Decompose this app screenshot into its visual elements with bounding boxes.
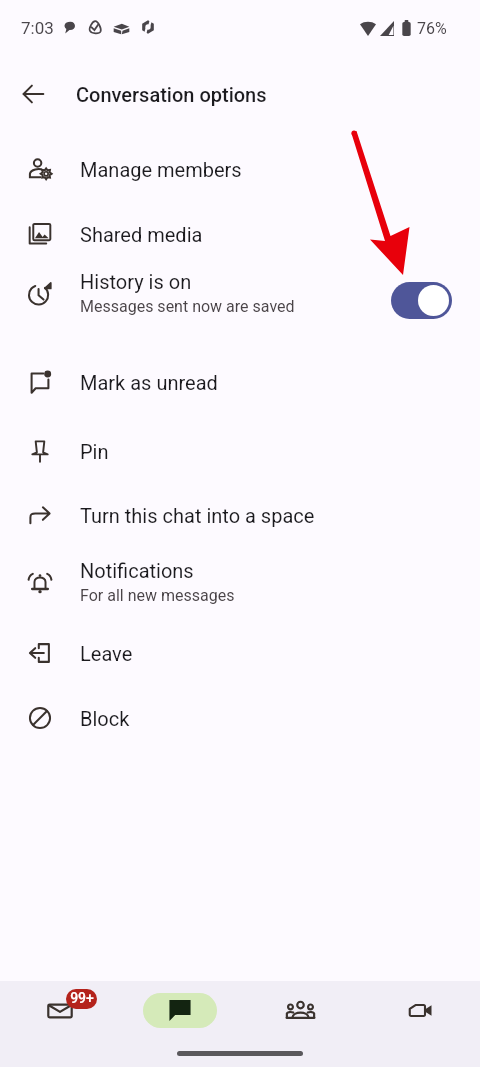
staticText: Mark as unread: [80, 371, 218, 394]
staticText: 76%: [417, 19, 447, 38]
staticText: Shared media: [80, 223, 203, 246]
button[interactable]: History is on: [0, 261, 480, 327]
staticText: Messages sent now are saved: [80, 297, 295, 316]
button[interactable]: Mark as unread: [0, 353, 480, 411]
staticText: Notifications: [80, 559, 194, 582]
button[interactable]: Block: [0, 689, 480, 747]
staticText: 99+: [70, 990, 94, 1006]
staticText: 7:03: [21, 18, 54, 38]
button[interactable]: Chat: [120, 981, 240, 1039]
staticText: Conversation options: [76, 83, 267, 106]
button[interactable]: Mail: [0, 981, 120, 1039]
button[interactable]: Manage members: [0, 140, 480, 198]
button[interactable]: Shared media: [0, 205, 480, 263]
staticText: Manage members: [80, 158, 242, 181]
button[interactable]: Notifications: [0, 550, 480, 616]
staticText: Pin: [80, 440, 109, 463]
button[interactable]: Back: [9, 70, 57, 118]
staticText: History is on: [80, 270, 192, 293]
button[interactable]: Meet: [360, 981, 480, 1039]
staticText: Leave: [80, 642, 133, 665]
staticText: Block: [80, 707, 130, 730]
staticText: Turn this chat into a space: [80, 504, 315, 527]
button[interactable]: Spaces: [240, 981, 360, 1039]
button[interactable]: Leave: [0, 624, 480, 682]
staticText: For all new messages: [80, 586, 235, 605]
button[interactable]: Pin: [0, 422, 480, 480]
button[interactable]: Turn this chat into a space: [0, 486, 480, 544]
button[interactable]: History toggle: [391, 282, 452, 319]
